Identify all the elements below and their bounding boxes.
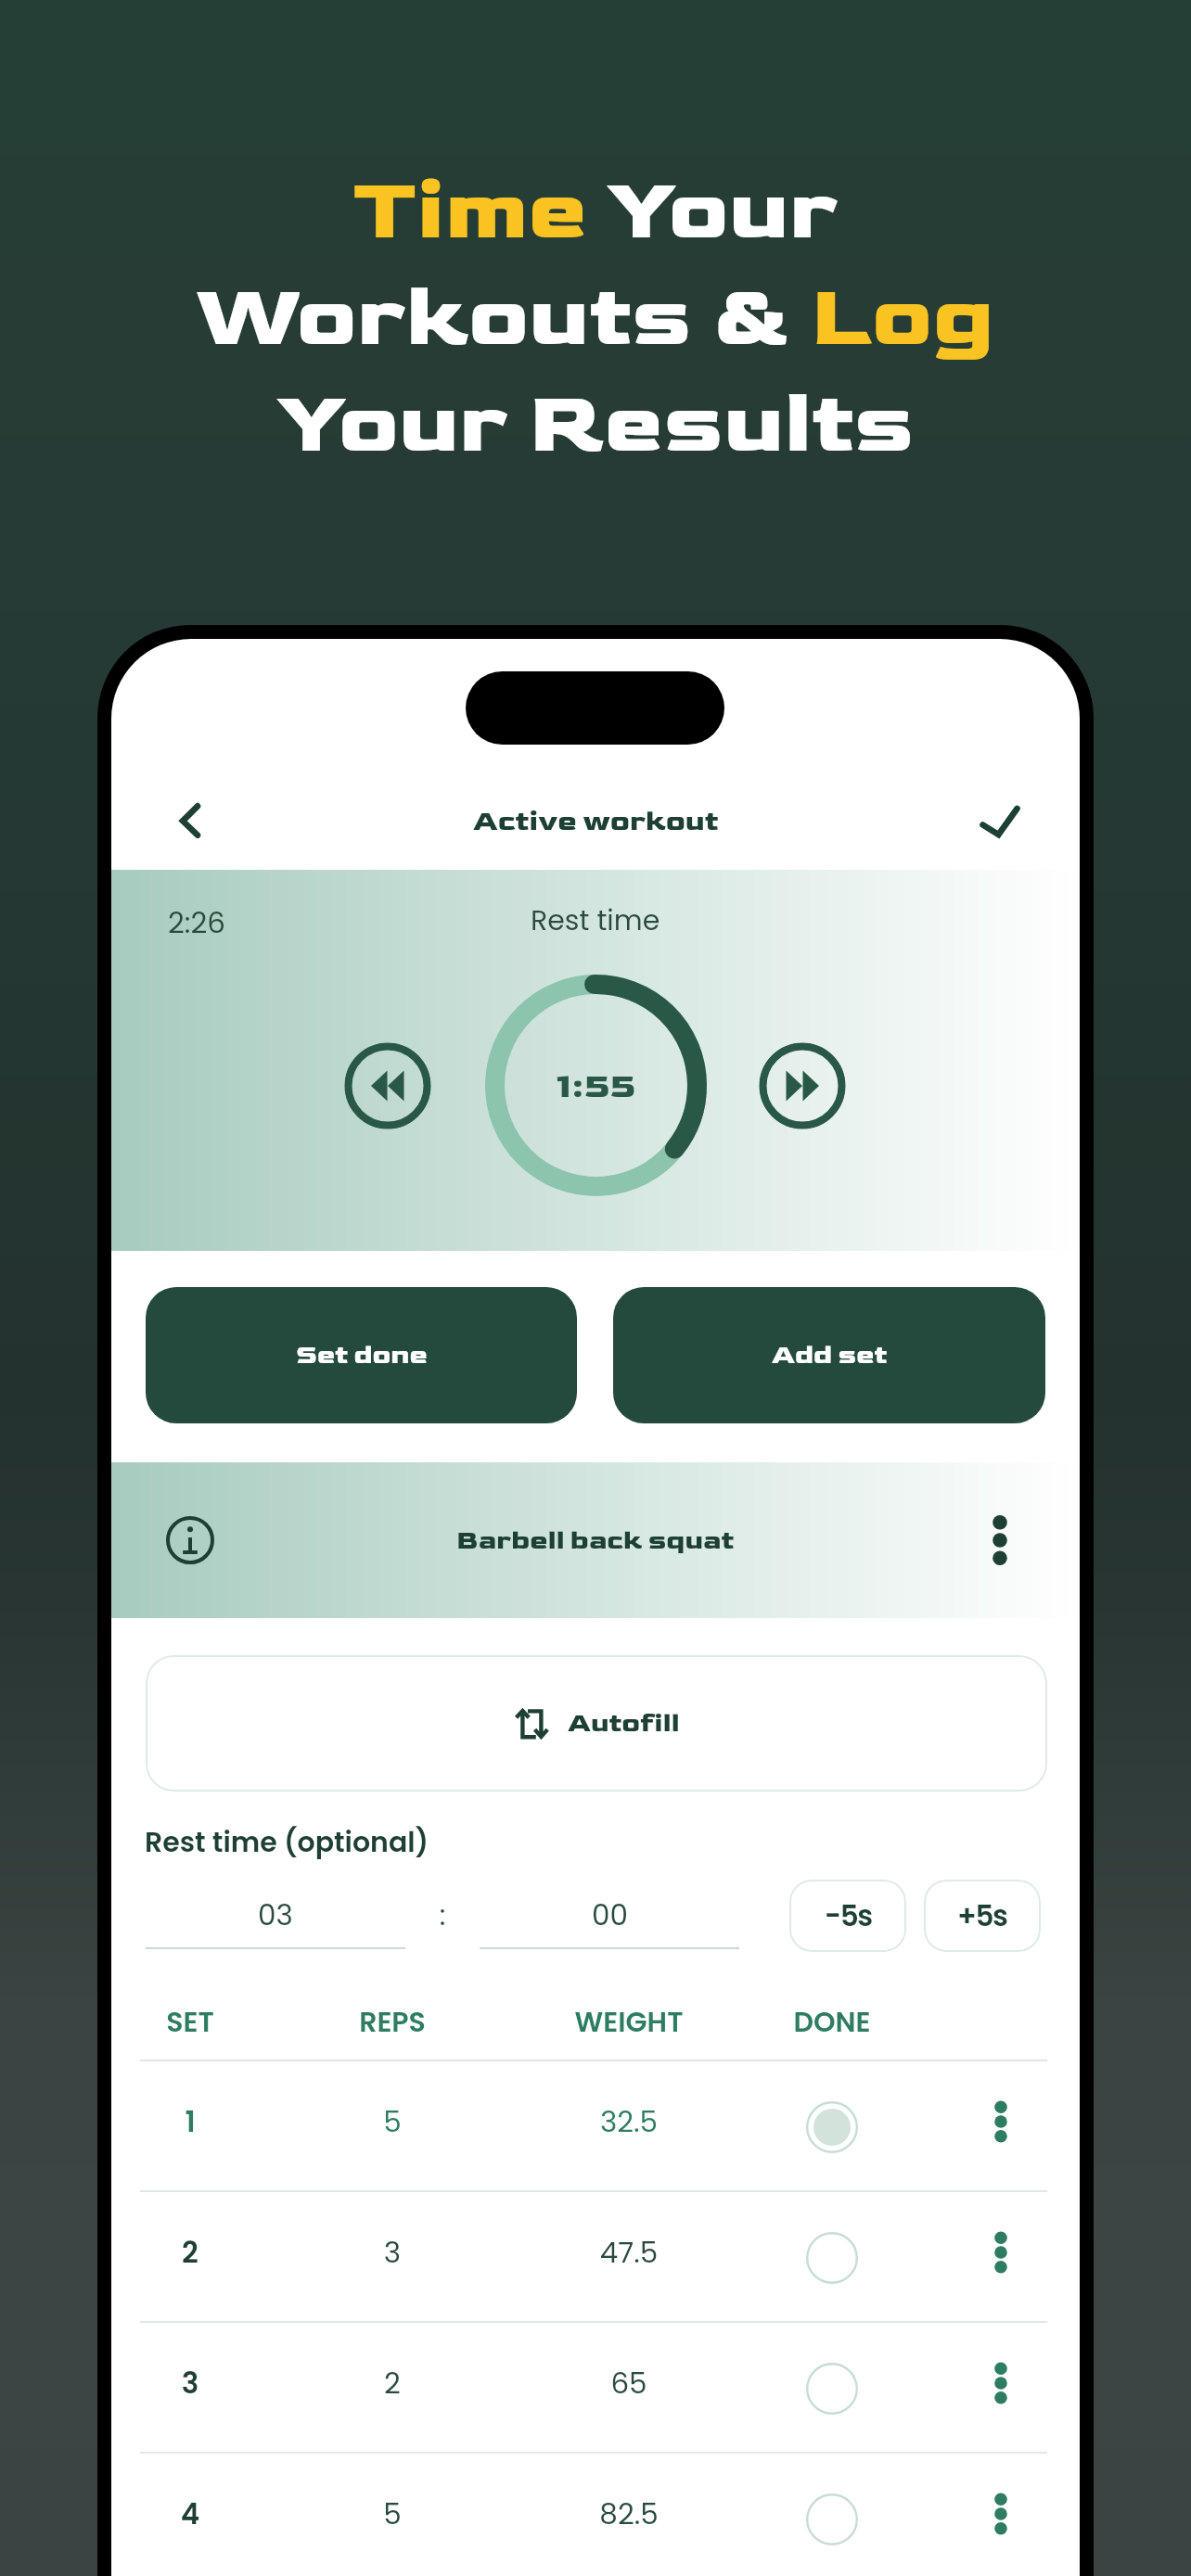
staticText: 47.5 bbox=[545, 2232, 712, 2272]
staticText: 1:55 bbox=[557, 1065, 636, 1108]
staticText: 32.5 bbox=[545, 2101, 712, 2141]
staticText: REPS bbox=[309, 2003, 476, 2042]
button[interactable]: Set options bbox=[973, 2094, 1029, 2149]
button[interactable]: Mark set done bbox=[799, 2225, 865, 2291]
staticText: : bbox=[405, 1894, 480, 1934]
staticText: 3 bbox=[111, 2363, 274, 2403]
button[interactable]: 3 bbox=[111, 2323, 1080, 2454]
button[interactable]: Mark set done bbox=[799, 2486, 865, 2553]
button[interactable]: Set options bbox=[973, 2355, 1029, 2411]
button[interactable]: Active workout bbox=[473, 804, 719, 838]
button[interactable]: Rewind 15 seconds bbox=[344, 1042, 431, 1129]
staticText: 65 bbox=[545, 2363, 712, 2403]
button[interactable]: Set options bbox=[973, 2225, 1029, 2280]
staticText: 2 bbox=[111, 2232, 274, 2272]
staticText: 00 bbox=[592, 1894, 628, 1934]
staticText: Set done bbox=[296, 1339, 428, 1371]
button[interactable]: Finish workout bbox=[955, 777, 1044, 866]
staticText: Your Results bbox=[276, 371, 915, 478]
button[interactable]: Autofill bbox=[146, 1655, 1047, 1792]
button[interactable]: Set options bbox=[973, 2486, 1029, 2542]
button[interactable]: Set completed bbox=[799, 2094, 865, 2161]
staticText: 82.5 bbox=[545, 2493, 712, 2533]
staticText: 3 bbox=[309, 2232, 476, 2272]
staticText: Add set bbox=[772, 1339, 888, 1371]
staticText: 4 bbox=[111, 2493, 274, 2533]
button[interactable]: Barbell back squat bbox=[456, 1524, 735, 1557]
staticText: 2 bbox=[309, 2363, 476, 2403]
button[interactable]: Exercise info bbox=[157, 1507, 224, 1574]
staticText: 1 bbox=[111, 2101, 274, 2141]
button[interactable]: +5s bbox=[924, 1880, 1041, 1952]
button[interactable]: Set done bbox=[146, 1287, 577, 1423]
staticText: -5s bbox=[825, 1895, 872, 1935]
staticText: 03 bbox=[258, 1894, 293, 1934]
staticText: 5 bbox=[309, 2493, 476, 2533]
button[interactable]: -5s bbox=[789, 1880, 906, 1952]
button[interactable]: 00 bbox=[480, 1879, 739, 1949]
staticText: 2:26 bbox=[168, 902, 225, 942]
staticText: SET bbox=[111, 2003, 274, 2042]
staticText: WEIGHT bbox=[545, 2003, 712, 2042]
button[interactable]: 1 bbox=[111, 2061, 1080, 2192]
button[interactable]: 4 bbox=[111, 2454, 1080, 2576]
button[interactable]: Add set bbox=[613, 1287, 1045, 1423]
staticText: DONE bbox=[749, 2003, 916, 2042]
staticText: Workouts & Log bbox=[197, 264, 994, 371]
button[interactable]: Exercise options bbox=[966, 1506, 1034, 1575]
button[interactable]: Back bbox=[146, 776, 235, 865]
staticText: Rest time bbox=[531, 901, 660, 940]
staticText: Time Your bbox=[352, 158, 839, 264]
staticText: Rest time (optional) bbox=[145, 1823, 429, 1862]
staticText: 5 bbox=[309, 2101, 476, 2141]
staticText: Autofill bbox=[568, 1707, 680, 1740]
button[interactable]: Mark set done bbox=[799, 2355, 865, 2422]
button[interactable]: 03 bbox=[146, 1879, 405, 1949]
staticText: +5s bbox=[957, 1895, 1007, 1935]
button[interactable]: 2 bbox=[111, 2192, 1080, 2323]
button[interactable]: Forward 15 seconds bbox=[759, 1042, 846, 1129]
